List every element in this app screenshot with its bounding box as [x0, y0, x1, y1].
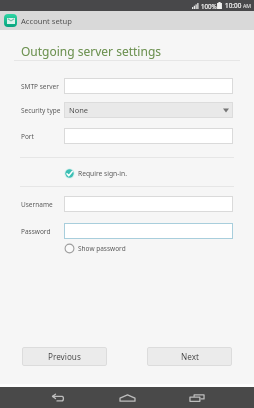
button[interactable]: [64, 78, 233, 94]
button[interactable]: [64, 196, 233, 212]
staticText: Password: [21, 227, 51, 236]
button[interactable]: Back: [24, 387, 93, 408]
staticText: AM: [243, 2, 252, 9]
button[interactable]: Require sign-in.: [64, 167, 128, 179]
button[interactable]: Previous: [22, 347, 107, 366]
staticText: SMTP server: [21, 82, 59, 91]
staticText: Previous: [48, 351, 81, 362]
button[interactable]: Home: [93, 387, 162, 408]
button[interactable]: None: [64, 102, 233, 118]
button[interactable]: Show password: [64, 243, 126, 254]
staticText: Security type: [21, 106, 61, 115]
staticText: 10:00: [225, 1, 242, 10]
staticText: Account setup: [21, 16, 72, 26]
button[interactable]: [64, 223, 233, 239]
staticText: Username: [21, 200, 53, 209]
staticText: None: [69, 105, 89, 115]
staticText: Next: [181, 351, 199, 362]
button[interactable]: Next: [147, 347, 232, 366]
staticText: Outgoing server settings: [21, 43, 162, 59]
staticText: Require sign-in.: [78, 169, 128, 178]
button[interactable]: [64, 128, 233, 144]
button[interactable]: Recent apps: [162, 387, 231, 408]
staticText: 100%: [201, 2, 217, 10]
staticText: Show password: [78, 244, 126, 253]
staticText: Port: [21, 132, 34, 141]
